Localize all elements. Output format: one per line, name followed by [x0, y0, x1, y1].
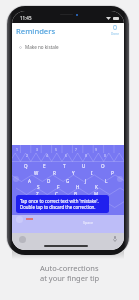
- staticText: V: [65, 196, 68, 202]
- staticText: Auto-corrections: [40, 263, 99, 273]
- staticText: F: [57, 184, 60, 190]
- staticText: Tap once to correct text with 'mistake'.: [20, 198, 99, 204]
- button[interactable]: Make no kistale: [12, 42, 124, 52]
- staticText: D: [47, 178, 51, 184]
- staticText: 9: [95, 147, 97, 152]
- staticText: Y: [72, 170, 75, 176]
- staticText: 0: [104, 153, 106, 158]
- staticText: A: [28, 178, 31, 184]
- staticText: U: [82, 163, 86, 169]
- button[interactable]: Change language: [19, 236, 26, 243]
- staticText: at your finger tip: [40, 273, 100, 283]
- staticText: 11:45: [20, 15, 32, 21]
- staticText: C: [55, 191, 58, 197]
- staticText: I: [91, 170, 93, 176]
- button[interactable]: Dictate: [113, 236, 117, 242]
- staticText: P: [111, 170, 114, 176]
- staticText: Double tap to discard the correction.: [20, 204, 96, 210]
- staticText: E: [43, 163, 46, 169]
- staticText: 4: [46, 153, 48, 158]
- staticText: R: [53, 170, 56, 176]
- staticText: Done: [111, 32, 120, 36]
- staticText: Reminders: [16, 26, 56, 36]
- button[interactable]: Tap once to correct text with 'mistake'.: [16, 195, 109, 213]
- staticText: 8: [85, 153, 87, 158]
- staticText: W: [34, 170, 39, 176]
- staticText: 3: [36, 147, 38, 152]
- staticText: X: [46, 196, 49, 202]
- staticText: 5: [55, 147, 57, 152]
- staticText: T: [63, 163, 66, 169]
- staticText: K: [95, 184, 98, 190]
- staticText: Q: [24, 163, 28, 169]
- button[interactable]: Shift: [13, 176, 19, 182]
- button[interactable]: Backspace: [117, 176, 123, 182]
- staticText: Space: [83, 220, 93, 225]
- staticText: 2: [26, 153, 28, 158]
- staticText: S: [37, 184, 40, 190]
- button[interactable]: Emoji: [16, 216, 23, 223]
- staticText: H: [76, 184, 80, 190]
- staticText: J: [85, 178, 87, 184]
- staticText: N: [84, 196, 88, 202]
- staticText: Z: [36, 191, 39, 197]
- staticText: O: [101, 163, 105, 169]
- staticText: B: [74, 191, 77, 197]
- staticText: G: [66, 178, 70, 184]
- staticText: 0: [113, 23, 118, 33]
- staticText: L: [105, 178, 108, 184]
- staticText: 6: [65, 153, 67, 158]
- staticText: 7: [75, 147, 77, 152]
- staticText: M: [94, 191, 99, 197]
- staticText: Make no kistale: [25, 44, 59, 50]
- staticText: 1: [16, 147, 18, 152]
